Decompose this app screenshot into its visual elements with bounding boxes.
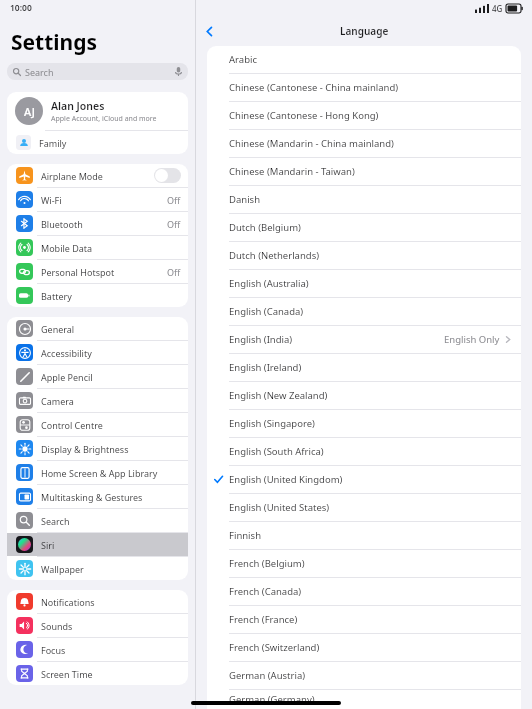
staticText: Wallpaper [41,563,181,575]
staticText: Settings [11,28,98,57]
button[interactable]: Airplane Mode [7,164,188,187]
staticText: 10:00 [10,2,32,14]
staticText: Apple Account, iCloud and more [51,114,157,124]
staticText: Dutch (Netherlands) [229,249,511,262]
staticText: French (France) [229,613,511,626]
staticText: German (Austria) [229,669,511,682]
staticText: Language [340,24,389,38]
staticText: Multitasking & Gestures [41,491,181,503]
button[interactable]: Bluetooth [7,212,188,235]
button[interactable]: Arabic [207,46,521,73]
button[interactable]: AJ [7,92,188,130]
button[interactable]: Screen Time [7,662,188,685]
button[interactable]: Multitasking & Gestures [7,485,188,508]
staticText: French (Belgium) [229,557,511,570]
staticText: Danish [229,193,511,206]
staticText: English (South Africa) [229,445,511,458]
button[interactable]: French (Canada) [207,578,521,605]
staticText: Alan Jones [51,99,105,113]
staticText: General [41,323,181,335]
button[interactable]: Finnish [207,522,521,549]
button[interactable]: Display & Brightness [7,437,188,460]
staticText: Chinese (Mandarin - Taiwan) [229,165,511,178]
staticText: Battery [41,290,181,302]
button[interactable]: Chinese (Cantonese - China mainland) [207,74,521,101]
staticText: 4G [492,3,503,14]
button[interactable]: German (Germany) [207,690,521,709]
staticText: Wi-Fi [41,194,167,206]
button[interactable]: Dutch (Netherlands) [207,242,521,269]
button[interactable]: Wallpaper [7,557,188,580]
staticText: Screen Time [41,668,181,680]
staticText: Chinese (Cantonese - Hong Kong) [229,109,511,122]
staticText: Personal Hotspot [41,266,167,278]
staticText: English Only [444,333,500,346]
button[interactable]: Back [196,18,222,44]
button[interactable]: English (India) [207,326,521,353]
button[interactable]: Camera [7,389,188,412]
button[interactable]: Accessibility [7,341,188,364]
button[interactable]: English (Ireland) [207,354,521,381]
button[interactable]: Search [7,63,188,80]
button[interactable]: Siri [7,533,188,556]
staticText: English (Canada) [229,305,511,318]
button[interactable]: Apple Pencil [7,365,188,388]
staticText: Camera [41,395,181,407]
button[interactable]: French (Belgium) [207,550,521,577]
staticText: Chinese (Mandarin - China mainland) [229,137,511,150]
button[interactable]: English (Australia) [207,270,521,297]
button[interactable]: Wi-Fi [7,188,188,211]
button[interactable]: French (Switzerland) [207,634,521,661]
button[interactable]: German (Austria) [207,662,521,689]
button[interactable]: Chinese (Mandarin - China mainland) [207,130,521,157]
staticText: AJ [24,104,35,119]
button[interactable]: Sounds [7,614,188,637]
button[interactable]: Mobile Data [7,236,188,259]
staticText: English (New Zealand) [229,389,511,402]
staticText: Search [41,515,181,527]
button[interactable]: Chinese (Mandarin - Taiwan) [207,158,521,185]
button[interactable]: Danish [207,186,521,213]
button[interactable]: English (United Kingdom) [207,466,521,493]
button[interactable]: Focus [7,638,188,661]
staticText: Siri [41,539,181,551]
staticText: Finnish [229,529,511,542]
staticText: Off [167,218,181,230]
button[interactable]: French (France) [207,606,521,633]
button[interactable]: Control Centre [7,413,188,436]
staticText: Dutch (Belgium) [229,221,511,234]
button[interactable]: Home Screen & App Library [7,461,188,484]
button[interactable]: Airplane Mode toggle [154,168,181,183]
staticText: Family [39,137,181,149]
staticText: French (Canada) [229,585,511,598]
staticText: Focus [41,644,181,656]
staticText: English (United Kingdom) [229,473,511,486]
staticText: Search [25,66,175,78]
other: Voice search [175,67,182,76]
staticText: Home Screen & App Library [41,467,181,479]
button[interactable]: Notifications [7,590,188,613]
staticText: Airplane Mode [41,170,154,182]
staticText: Arabic [229,53,511,66]
button[interactable]: Chinese (Cantonese - Hong Kong) [207,102,521,129]
staticText: Bluetooth [41,218,167,230]
staticText: Notifications [41,596,181,608]
staticText: Accessibility [41,347,181,359]
button[interactable]: English (Singapore) [207,410,521,437]
staticText: Mobile Data [41,242,181,254]
button[interactable]: English (United States) [207,494,521,521]
button[interactable]: General [7,317,188,340]
button[interactable]: English (South Africa) [207,438,521,465]
button[interactable]: Battery [7,284,188,307]
staticText: Chinese (Cantonese - China mainland) [229,81,511,94]
staticText: English (Australia) [229,277,511,290]
staticText: Off [167,266,181,278]
button[interactable]: Dutch (Belgium) [207,214,521,241]
button[interactable]: English (Canada) [207,298,521,325]
staticText: Display & Brightness [41,443,181,455]
button[interactable]: Search [7,509,188,532]
button[interactable]: Personal Hotspot [7,260,188,283]
button[interactable]: English (New Zealand) [207,382,521,409]
button[interactable]: Family [7,131,188,154]
staticText: English (United States) [229,501,511,514]
